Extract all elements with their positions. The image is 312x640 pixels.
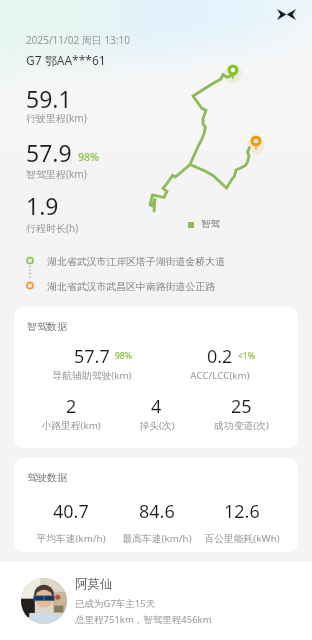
staticText: 2 — [66, 394, 77, 419]
staticText: 57.9 — [26, 137, 72, 168]
staticText: 行程时长(h) — [26, 221, 79, 235]
staticText: 驾驶数据 — [27, 471, 67, 484]
staticText: <1% — [238, 350, 255, 362]
staticText: 最高车速(km/h) — [122, 532, 192, 545]
staticText: 阿莫仙 — [75, 576, 113, 592]
staticText: G7 鄂AA***61 — [26, 52, 106, 68]
staticText: 智驾里程(km) — [26, 167, 87, 181]
staticText: 智驾数据 — [27, 320, 67, 333]
staticText: 84.6 — [139, 499, 175, 524]
staticText: 行驶里程(km) — [26, 111, 87, 125]
staticText: 1.9 — [26, 190, 59, 221]
staticText: 导航辅助驾驶(km) — [52, 369, 132, 382]
staticText: 98% — [78, 150, 99, 164]
staticText: 25 — [231, 394, 252, 419]
staticText: 59.1 — [26, 83, 72, 114]
staticText: 小路里程(km) — [41, 419, 101, 432]
staticText: 40.7 — [53, 499, 89, 524]
staticText: ACC/LCC(km) — [190, 369, 250, 382]
staticText: 湖北省武汉市武昌区中南路街道公正路 — [47, 280, 216, 292]
staticText: 平均车速(km/h) — [36, 532, 106, 545]
staticText: 成功变道(次) — [214, 419, 269, 432]
staticText: 百公里能耗(kWh) — [204, 532, 280, 545]
staticText: 总里程751km，智驾里程456km — [75, 613, 212, 626]
button[interactable]: 智驾数据 — [14, 307, 298, 448]
staticText: 湖北省武汉市江岸区塔子湖街道金桥大道 — [47, 255, 226, 267]
button[interactable]: Close — [272, 1, 300, 27]
staticText: 智驾 — [201, 218, 220, 230]
staticText: 2025/11/02 周日 13:10 — [26, 33, 130, 47]
staticText: 0.2 — [207, 344, 233, 369]
staticText: 掉头(次) — [139, 419, 175, 432]
button[interactable]: 驾驶数据 — [14, 458, 298, 552]
staticText: 4 — [151, 394, 162, 419]
staticText: 57.7 — [74, 344, 110, 369]
staticText: 已成为G7车主15天 — [75, 597, 156, 610]
button[interactable]: 阿莫仙 — [0, 562, 312, 640]
staticText: 98% — [115, 350, 132, 362]
staticText: 12.6 — [224, 499, 260, 524]
